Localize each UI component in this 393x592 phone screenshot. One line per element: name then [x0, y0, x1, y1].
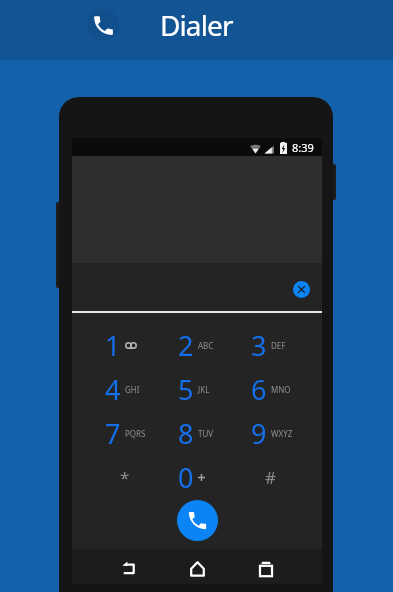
- staticText: ABC: [198, 340, 214, 351]
- staticText: 7: [105, 415, 121, 452]
- button[interactable]: *: [88, 455, 161, 499]
- button[interactable]: 3: [234, 323, 307, 367]
- button[interactable]: Call: [177, 500, 218, 541]
- staticText: 5: [178, 371, 194, 408]
- staticText: TUV: [198, 428, 214, 439]
- button[interactable]: 9: [234, 411, 307, 455]
- staticText: *: [120, 466, 130, 489]
- button[interactable]: 1: [88, 323, 161, 367]
- staticText: 1: [105, 327, 121, 364]
- staticText: JKL: [198, 384, 210, 395]
- staticText: GHI: [125, 384, 140, 395]
- staticText: 3: [251, 327, 267, 364]
- staticText: 8: [178, 415, 194, 452]
- button[interactable]: Back: [106, 551, 153, 586]
- staticText: 2: [178, 327, 194, 364]
- button[interactable]: 5: [161, 367, 234, 411]
- staticText: 9: [251, 415, 267, 452]
- button[interactable]: Recents: [242, 551, 289, 586]
- button[interactable]: 7: [88, 411, 161, 455]
- staticText: WXYZ: [271, 428, 293, 439]
- staticText: Dialer: [160, 6, 233, 44]
- button[interactable]: Home: [174, 551, 221, 586]
- button[interactable]: #: [234, 455, 307, 499]
- button[interactable]: 0: [161, 455, 234, 499]
- staticText: MNO: [271, 384, 291, 395]
- button[interactable]: 4: [88, 367, 161, 411]
- staticText: 4: [105, 371, 121, 408]
- button[interactable]: 8: [161, 411, 234, 455]
- staticText: PQRS: [125, 428, 146, 439]
- staticText: 8:39: [292, 140, 314, 155]
- staticText: DEF: [271, 340, 286, 351]
- button[interactable]: 6: [234, 367, 307, 411]
- staticText: 0: [178, 459, 194, 496]
- button[interactable]: 2: [161, 323, 234, 367]
- button[interactable]: Delete: [293, 281, 310, 298]
- staticText: #: [265, 466, 276, 489]
- staticText: 6: [251, 371, 267, 408]
- button[interactable]: Dialer: [0, 0, 393, 49]
